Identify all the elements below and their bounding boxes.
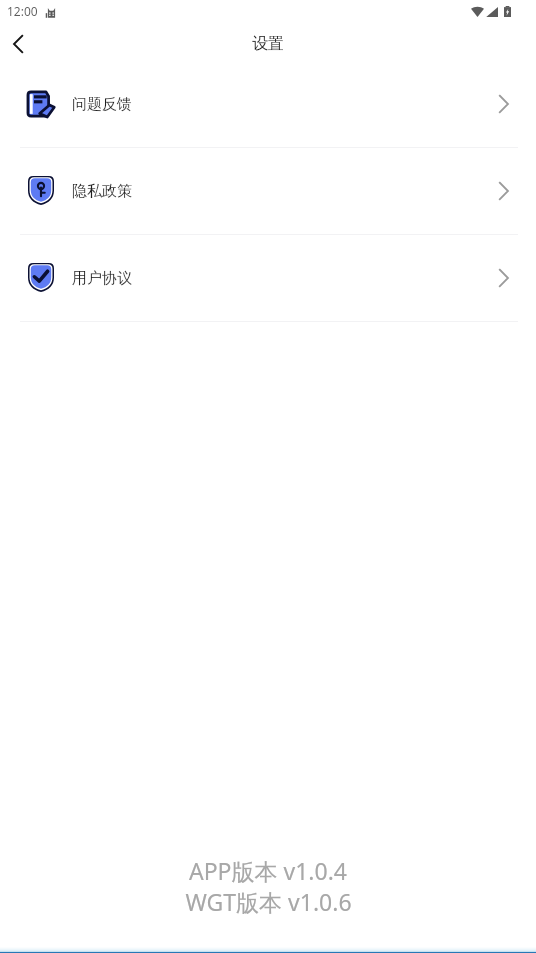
staticText: 问题反馈: [72, 95, 132, 114]
button[interactable]: 问题反馈: [0, 61, 536, 147]
staticText: APP版本 v1.0.4: [189, 855, 347, 886]
button[interactable]: 用户协议: [0, 235, 536, 321]
staticText: WGT版本 v1.0.6: [185, 886, 352, 917]
staticText: 设置: [252, 34, 284, 54]
button[interactable]: 隐私政策: [0, 148, 536, 234]
staticText: 12:00: [7, 3, 38, 19]
staticText: 隐私政策: [72, 182, 132, 201]
button[interactable]: Back: [0, 24, 36, 60]
staticText: 用户协议: [72, 269, 132, 288]
